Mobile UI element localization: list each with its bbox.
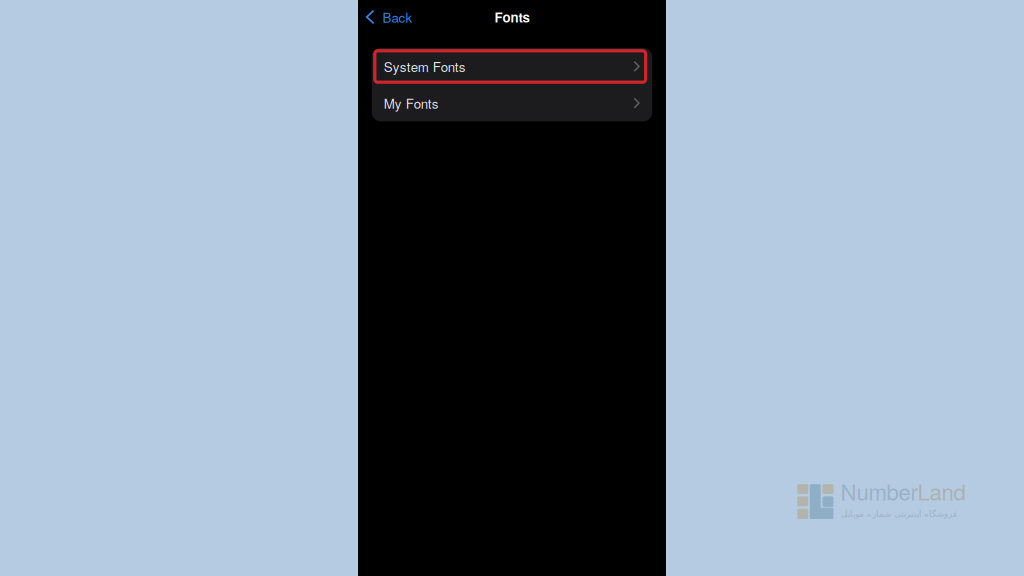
button[interactable]: Back [358,2,412,32]
staticText: Fonts [494,7,529,27]
staticText: System Fonts [384,57,466,76]
staticText: Land [917,475,965,507]
staticText: My Fonts [384,93,439,113]
staticText: Number [840,475,917,507]
button[interactable]: System Fonts [372,48,652,85]
button[interactable]: My Fonts [372,85,652,121]
staticText: فروشگاه اینترنتی شماره موبایل [840,509,956,519]
staticText: Back [382,7,412,27]
